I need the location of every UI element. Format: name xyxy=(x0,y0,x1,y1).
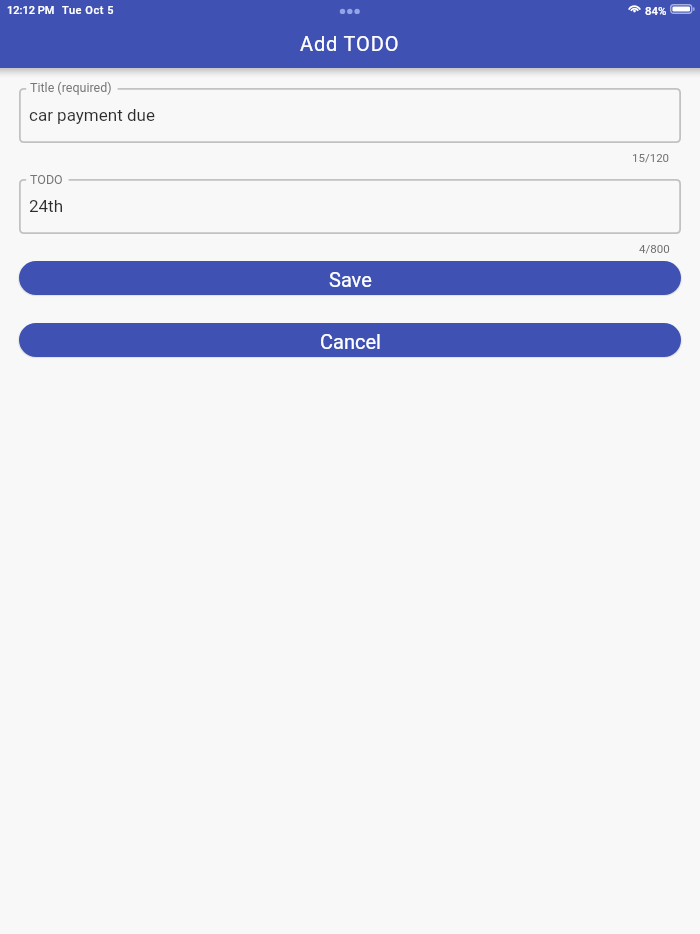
staticText: car payment due xyxy=(29,105,155,125)
staticText: 24th xyxy=(29,196,64,216)
button[interactable]: car payment due xyxy=(19,88,681,143)
button[interactable]: 24th xyxy=(19,179,681,234)
staticText: Add TODO xyxy=(300,32,400,55)
staticText: Title (required) xyxy=(30,80,112,95)
staticText: Tue Oct 5 xyxy=(62,4,115,17)
staticText: TODO xyxy=(30,172,63,187)
staticText: 84% xyxy=(645,4,667,17)
button[interactable]: Save xyxy=(19,261,681,295)
staticText: 12:12 PM xyxy=(7,4,55,17)
staticText: 15/120 xyxy=(632,151,670,164)
other: Battery 84 percent xyxy=(670,4,696,14)
other: More xyxy=(338,6,362,17)
other: Wi-Fi xyxy=(628,4,641,13)
button[interactable]: Cancel xyxy=(19,323,681,357)
staticText: Cancel xyxy=(320,330,381,353)
staticText: Save xyxy=(329,268,372,291)
staticText: 4/800 xyxy=(639,242,670,255)
